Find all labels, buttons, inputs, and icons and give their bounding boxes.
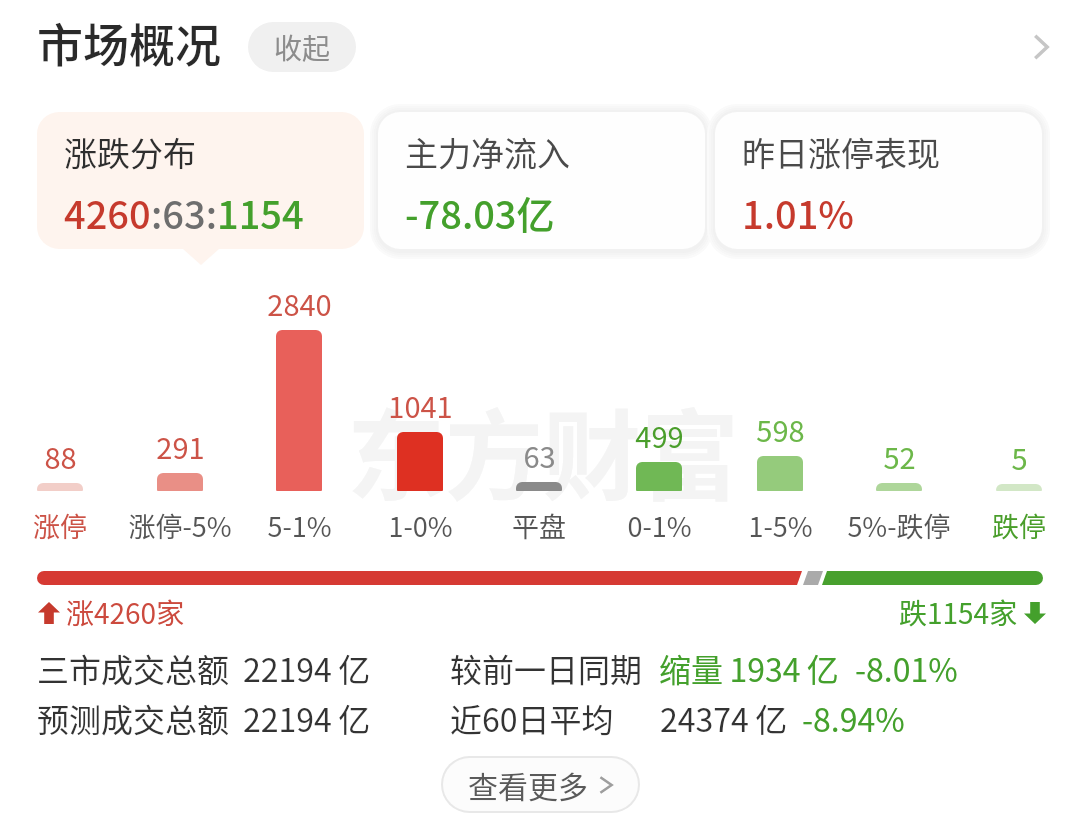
staticText: 主力净流入 — [405, 128, 570, 176]
staticText: 88 — [44, 435, 77, 475]
staticText: 52 — [883, 435, 916, 475]
staticText: 63 — [523, 434, 556, 474]
staticText: 跌停 — [992, 506, 1046, 544]
staticText: 5-1% — [267, 506, 332, 544]
staticText: 昨日涨停表现 — [742, 128, 940, 176]
staticText: 291 — [156, 425, 205, 465]
staticText: 22194 亿 — [243, 645, 371, 691]
staticText: 5 — [1011, 436, 1028, 476]
staticText: 东方财富 — [347, 378, 740, 520]
staticText: 598 — [756, 408, 805, 448]
staticText: 市场概况 — [37, 9, 221, 76]
staticText: 1-5% — [748, 506, 813, 544]
staticText: 涨停-5% — [128, 506, 232, 544]
button[interactable]: 主力净流入 — [378, 112, 705, 249]
staticText: 0-1% — [627, 506, 692, 544]
staticText: 1041 — [388, 384, 453, 424]
staticText: 22194 亿 — [243, 695, 371, 741]
button[interactable]: 展开更多 — [1010, 17, 1070, 77]
staticText: 平盘 — [512, 506, 566, 544]
staticText: -78.03亿 — [405, 185, 555, 240]
staticText: 5%-跌停 — [847, 506, 951, 544]
staticText: 涨跌分布 — [64, 128, 196, 176]
staticText: 涨4260家 — [66, 592, 185, 633]
staticText: 1.01% — [742, 185, 854, 240]
staticText: 1-0% — [388, 506, 453, 544]
staticText: 涨停 — [33, 506, 87, 544]
staticText: 缩量 1934 亿 — [659, 645, 839, 691]
staticText: 查看更多 — [468, 763, 588, 806]
button[interactable]: 涨跌分布 — [37, 112, 364, 249]
staticText: :63: — [151, 185, 217, 240]
button[interactable]: 查看更多 — [443, 758, 638, 811]
staticText: 较前一日同期 — [450, 645, 643, 691]
button[interactable]: 昨日涨停表现 — [715, 112, 1042, 249]
staticText: 2840 — [267, 282, 332, 322]
staticText: 4260 — [64, 185, 151, 240]
staticText: 跌1154家 — [899, 592, 1018, 633]
staticText: 收起 — [274, 27, 331, 68]
staticText: -8.94% — [802, 695, 905, 741]
staticText: 1154 — [217, 185, 304, 240]
staticText: 预测成交总额 — [37, 695, 230, 741]
staticText: 499 — [635, 414, 684, 454]
staticText: -8.01% — [855, 645, 958, 691]
staticText: 近60日平均 — [450, 695, 614, 741]
staticText: 24374 亿 — [660, 695, 788, 741]
staticText: 三市成交总额 — [37, 645, 230, 691]
button[interactable]: 收起 — [248, 22, 356, 72]
